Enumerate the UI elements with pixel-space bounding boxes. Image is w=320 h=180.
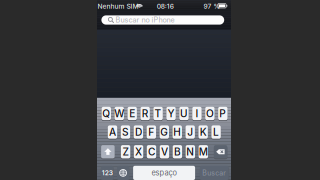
- staticText: G: [160, 126, 168, 138]
- staticText: B: [174, 146, 181, 158]
- staticText: U: [180, 107, 188, 120]
- staticText: R: [142, 107, 149, 120]
- button[interactable]: H: [173, 125, 182, 139]
- staticText: Z: [123, 146, 129, 158]
- staticText: espaço: [152, 168, 177, 177]
- button[interactable]: B: [173, 144, 182, 159]
- staticText: F: [148, 126, 154, 138]
- button[interactable]: U: [179, 106, 189, 121]
- button[interactable]: X: [134, 144, 143, 159]
- button[interactable]: Buscar no iPhone: [101, 14, 224, 26]
- staticText: K: [200, 126, 207, 138]
- button[interactable]: N: [186, 144, 195, 159]
- button[interactable]: Z: [121, 144, 130, 159]
- button[interactable]: D: [134, 125, 143, 139]
- staticText: Nenhum SIM: [97, 2, 138, 10]
- button[interactable]: R: [140, 106, 150, 121]
- staticText: D: [135, 126, 142, 138]
- button[interactable]: W: [114, 106, 124, 121]
- button[interactable]: 123: [101, 165, 113, 180]
- staticText: P: [219, 107, 226, 120]
- button[interactable]: E: [127, 106, 137, 121]
- staticText: 97 %: [203, 2, 220, 10]
- staticText: A: [109, 126, 116, 138]
- staticText: J: [187, 126, 193, 138]
- staticText: 08:16: [157, 2, 174, 10]
- button[interactable]: K: [198, 125, 208, 139]
- button[interactable]: S: [121, 125, 130, 139]
- button[interactable]: espaço: [133, 165, 195, 180]
- button[interactable]: Buscar: [200, 165, 229, 180]
- staticText: O: [206, 107, 214, 120]
- button[interactable]: T: [153, 106, 163, 121]
- staticText: Q: [102, 107, 110, 120]
- staticText: M: [199, 146, 208, 158]
- staticText: W: [114, 107, 124, 120]
- button[interactable]: G: [160, 125, 169, 139]
- staticText: T: [155, 107, 162, 120]
- staticText: I: [195, 107, 198, 120]
- staticText: 123: [102, 169, 113, 177]
- button[interactable]: M: [199, 144, 208, 159]
- button[interactable]: Shift: [101, 144, 115, 159]
- button[interactable]: Y: [166, 106, 176, 121]
- button[interactable]: L: [211, 125, 221, 139]
- button[interactable]: V: [160, 144, 169, 159]
- button[interactable]: A: [108, 125, 117, 139]
- staticText: Buscar no iPhone: [115, 16, 174, 24]
- staticText: Buscar: [202, 169, 226, 177]
- staticText: C: [148, 146, 155, 158]
- button[interactable]: Next keyboard: [117, 165, 129, 180]
- button[interactable]: I: [192, 106, 202, 121]
- button[interactable]: J: [185, 125, 195, 139]
- staticText: V: [161, 146, 168, 158]
- staticText: Y: [167, 107, 174, 120]
- staticText: N: [186, 146, 194, 158]
- button[interactable]: O: [205, 106, 215, 121]
- staticText: L: [213, 126, 219, 138]
- staticText: H: [173, 126, 181, 138]
- button[interactable]: Delete: [214, 144, 227, 159]
- button[interactable]: F: [147, 125, 156, 139]
- staticText: E: [129, 107, 135, 120]
- button[interactable]: P: [218, 106, 227, 121]
- button[interactable]: Q: [102, 106, 111, 121]
- staticText: X: [135, 146, 142, 158]
- staticText: S: [122, 126, 129, 138]
- button[interactable]: C: [147, 144, 156, 159]
